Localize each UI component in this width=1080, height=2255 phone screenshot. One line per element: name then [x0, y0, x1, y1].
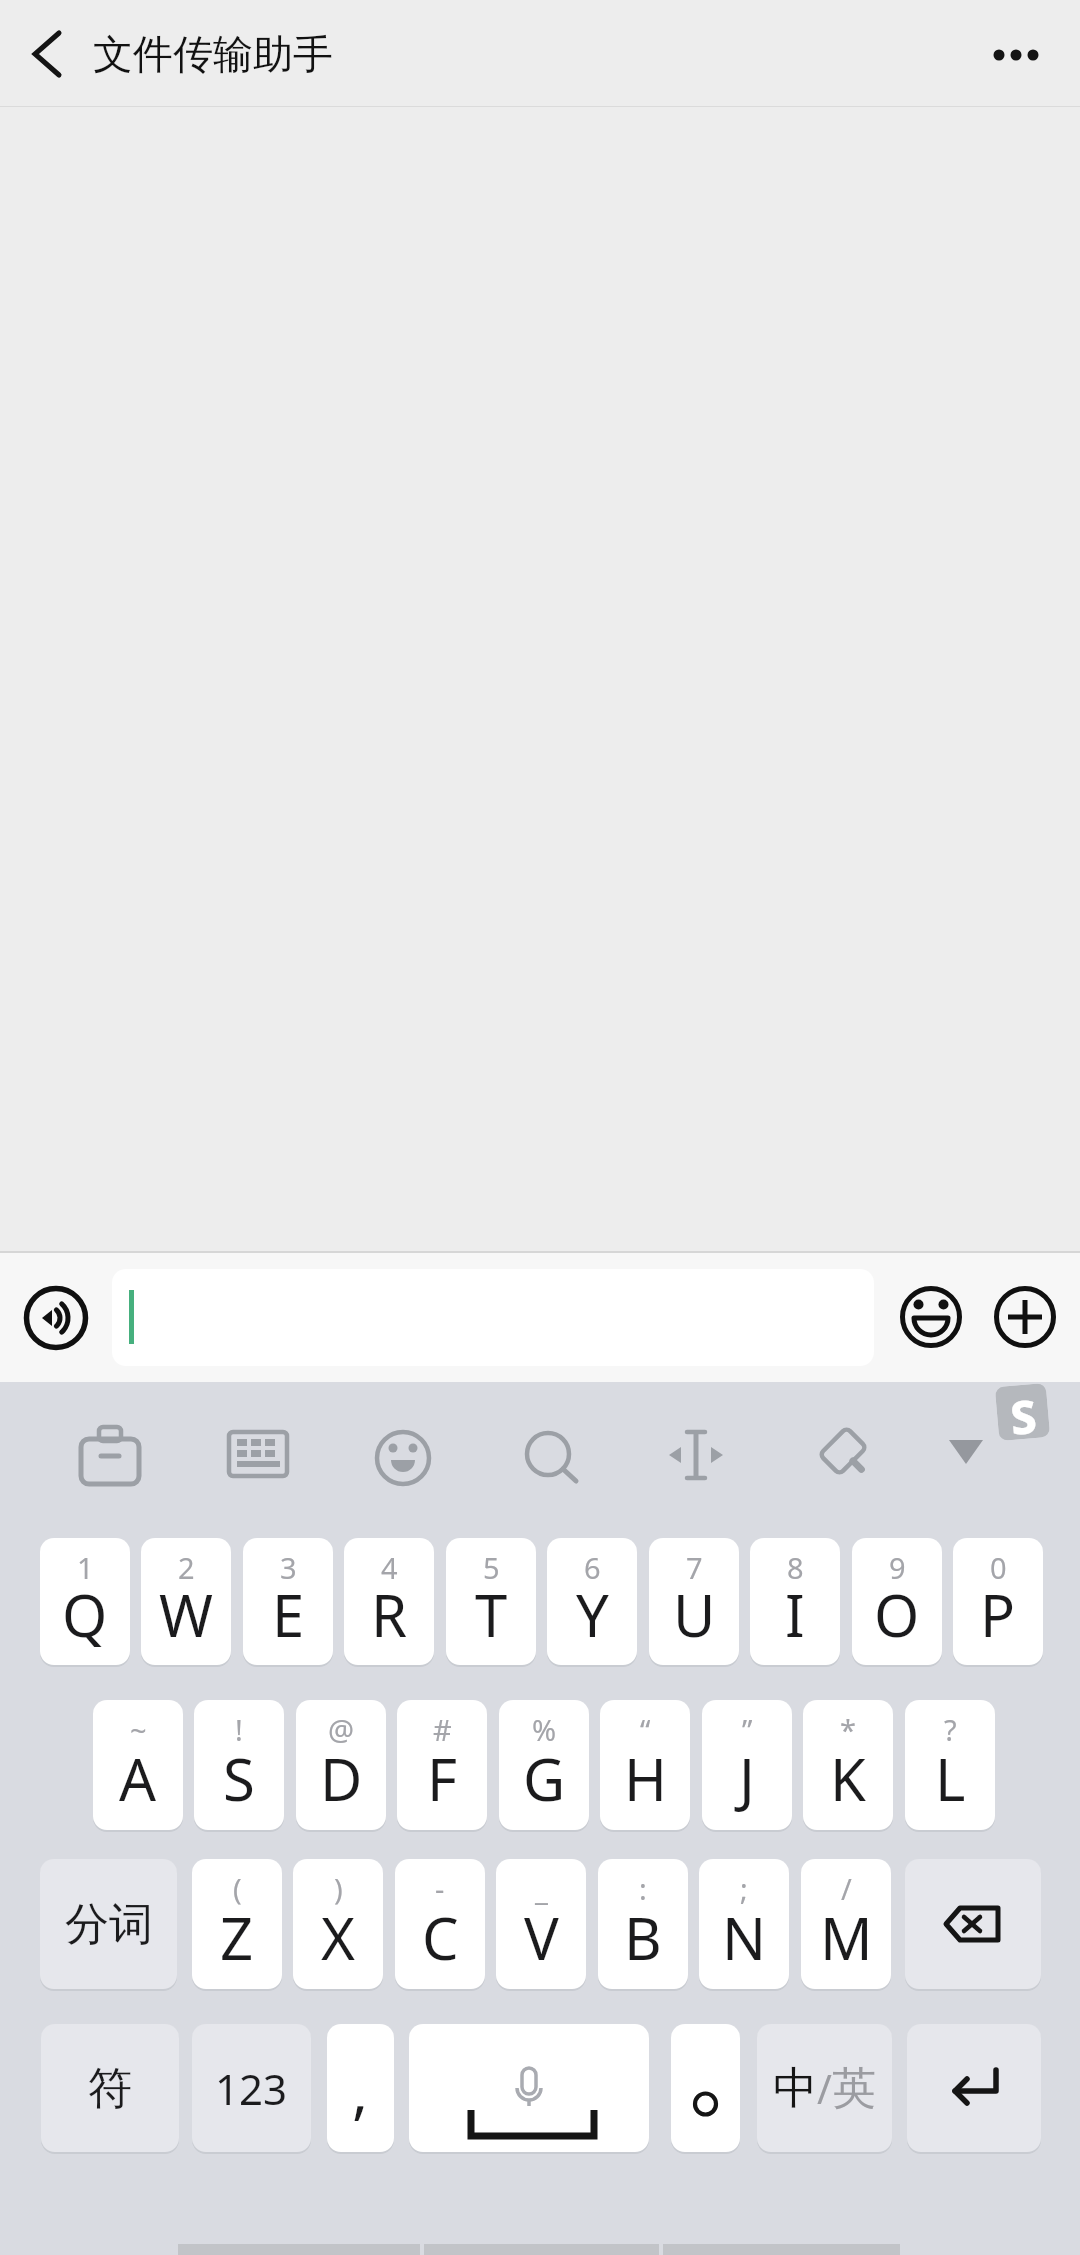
button[interactable]: %	[499, 1700, 589, 1830]
button[interactable]	[22, 22, 76, 86]
staticText: D	[320, 1739, 363, 1818]
staticText: ,	[352, 2049, 369, 2131]
staticText: S	[1008, 1384, 1038, 1440]
staticText: I	[785, 1575, 805, 1654]
staticText: Y	[576, 1575, 609, 1654]
staticText: 中	[773, 2061, 817, 2116]
button[interactable]: /	[801, 1859, 891, 1989]
button[interactable]: 2	[141, 1538, 231, 1665]
staticText: E	[272, 1575, 305, 1654]
staticText: A	[119, 1739, 157, 1818]
button[interactable]: ?	[905, 1700, 995, 1830]
staticText: 4	[381, 1548, 398, 1587]
staticText: V	[524, 1898, 559, 1977]
staticText: @	[328, 1710, 355, 1749]
staticText: 5	[483, 1548, 500, 1587]
staticText: ~	[130, 1710, 147, 1749]
button[interactable]: 123	[192, 2024, 311, 2152]
button[interactable]	[813, 1425, 873, 1485]
button[interactable]: (	[192, 1859, 282, 1989]
staticText: X	[321, 1898, 355, 1977]
staticText: /	[817, 2061, 832, 2115]
button[interactable]: -	[395, 1859, 485, 1989]
staticText: F	[427, 1739, 458, 1818]
button[interactable]: !	[194, 1700, 284, 1830]
staticText: N	[722, 1898, 767, 1977]
button[interactable]: 1	[40, 1538, 130, 1665]
button[interactable]: @	[296, 1700, 386, 1830]
button[interactable]	[907, 2024, 1041, 2152]
staticText: R	[371, 1575, 408, 1654]
button[interactable]	[905, 1859, 1041, 1989]
button[interactable]: 6	[547, 1538, 637, 1665]
staticText: G	[523, 1739, 566, 1818]
staticText: -	[435, 1869, 445, 1908]
staticText: 123	[215, 2060, 288, 2117]
button[interactable]	[226, 1427, 290, 1479]
staticText: “	[640, 1710, 651, 1749]
staticText: U	[673, 1575, 716, 1654]
button[interactable]	[523, 1429, 581, 1487]
staticText: :	[639, 1869, 647, 1908]
staticText: 3	[280, 1548, 297, 1587]
staticText: S	[223, 1739, 255, 1818]
staticText: 1	[77, 1548, 94, 1587]
button[interactable]	[23, 1285, 89, 1351]
staticText: *	[840, 1710, 856, 1749]
staticText: H	[624, 1739, 667, 1818]
button[interactable]: 分词	[40, 1859, 177, 1989]
button[interactable]: “	[600, 1700, 690, 1830]
button[interactable]: *	[803, 1700, 893, 1830]
button[interactable]: 8	[750, 1538, 840, 1665]
button[interactable]: :	[598, 1859, 688, 1989]
button[interactable]: ,	[327, 2024, 394, 2152]
staticText: 符	[88, 2061, 132, 2116]
button[interactable]: ~	[93, 1700, 183, 1830]
button[interactable]: 符	[41, 2024, 179, 2152]
staticText: K	[830, 1739, 866, 1818]
button[interactable]: 5	[446, 1538, 536, 1665]
staticText: #	[433, 1710, 452, 1749]
staticText: C	[422, 1898, 459, 1977]
button[interactable]: 3	[243, 1538, 333, 1665]
button[interactable]: 7	[649, 1538, 739, 1665]
button[interactable]	[409, 2024, 649, 2152]
button[interactable]: #	[397, 1700, 487, 1830]
staticText: J	[739, 1739, 755, 1818]
button[interactable]: 中	[757, 2024, 892, 2152]
staticText: 0	[990, 1548, 1007, 1587]
staticText: (	[233, 1869, 242, 1908]
button[interactable]	[75, 1422, 145, 1488]
button[interactable]	[994, 1286, 1056, 1348]
staticText: 分词	[65, 1897, 153, 1952]
button[interactable]: 9	[852, 1538, 942, 1665]
staticText: ;	[740, 1869, 748, 1908]
button[interactable]	[375, 1430, 431, 1486]
staticText: Q	[62, 1575, 108, 1654]
button[interactable]: )	[293, 1859, 383, 1989]
button[interactable]: 0	[953, 1538, 1043, 1665]
button[interactable]: _	[496, 1859, 586, 1989]
staticText: ?	[944, 1710, 957, 1749]
button[interactable]	[900, 1286, 962, 1348]
button[interactable]: ;	[699, 1859, 789, 1989]
staticText: )	[334, 1869, 343, 1908]
staticText: M	[820, 1898, 873, 1977]
button[interactable]: 4	[344, 1538, 434, 1665]
staticText: B	[624, 1898, 662, 1977]
staticText: Z	[220, 1898, 254, 1977]
staticText: O	[874, 1575, 920, 1654]
staticText: 9	[889, 1548, 906, 1587]
staticText: L	[935, 1739, 966, 1818]
button[interactable]	[975, 25, 1057, 85]
staticText: T	[475, 1575, 508, 1654]
button[interactable]	[664, 1427, 728, 1483]
staticText: 7	[686, 1548, 703, 1587]
staticText: /	[841, 1869, 852, 1908]
button[interactable]	[671, 2024, 740, 2152]
staticText: 2	[178, 1548, 195, 1587]
button[interactable]	[941, 1432, 991, 1472]
button[interactable]	[112, 1269, 874, 1366]
staticText: 8	[787, 1548, 804, 1587]
button[interactable]: ”	[702, 1700, 792, 1830]
